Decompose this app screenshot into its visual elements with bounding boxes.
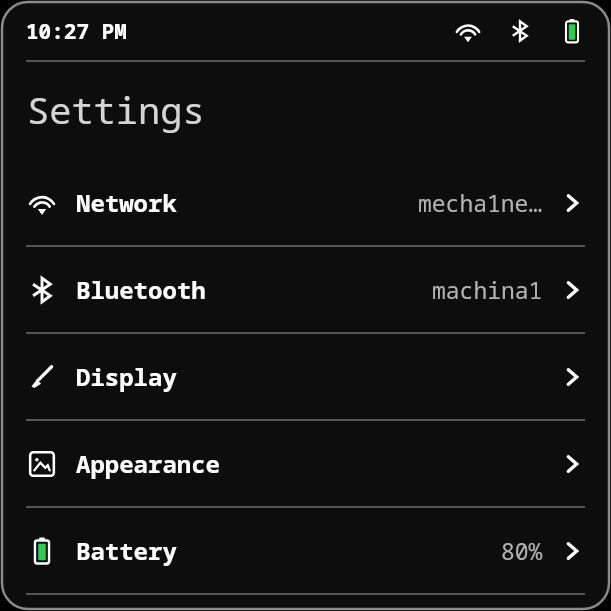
staticText: 80% [501,535,543,566]
staticText: Settings [27,84,205,134]
staticText: Network [76,186,177,219]
staticText: 10:27 PM [26,17,127,46]
staticText: Bluetooth [76,273,206,306]
button[interactable]: Appearance [2,421,609,506]
other: Open Appearance [559,451,585,477]
staticText: Battery [76,534,177,567]
other: Open Battery [559,538,585,564]
other: Open Display [559,364,585,390]
staticText: machina1 [432,274,543,305]
button[interactable]: Display [2,334,609,419]
button[interactable]: Battery [2,508,609,593]
button[interactable]: Bluetooth [2,247,609,332]
other: Open Network [559,190,585,216]
staticText: mecha1ne… [418,187,543,218]
staticText: Appearance [76,447,220,480]
staticText: Display [76,360,177,393]
button[interactable]: Network [2,160,609,245]
other: Open Bluetooth [559,277,585,303]
